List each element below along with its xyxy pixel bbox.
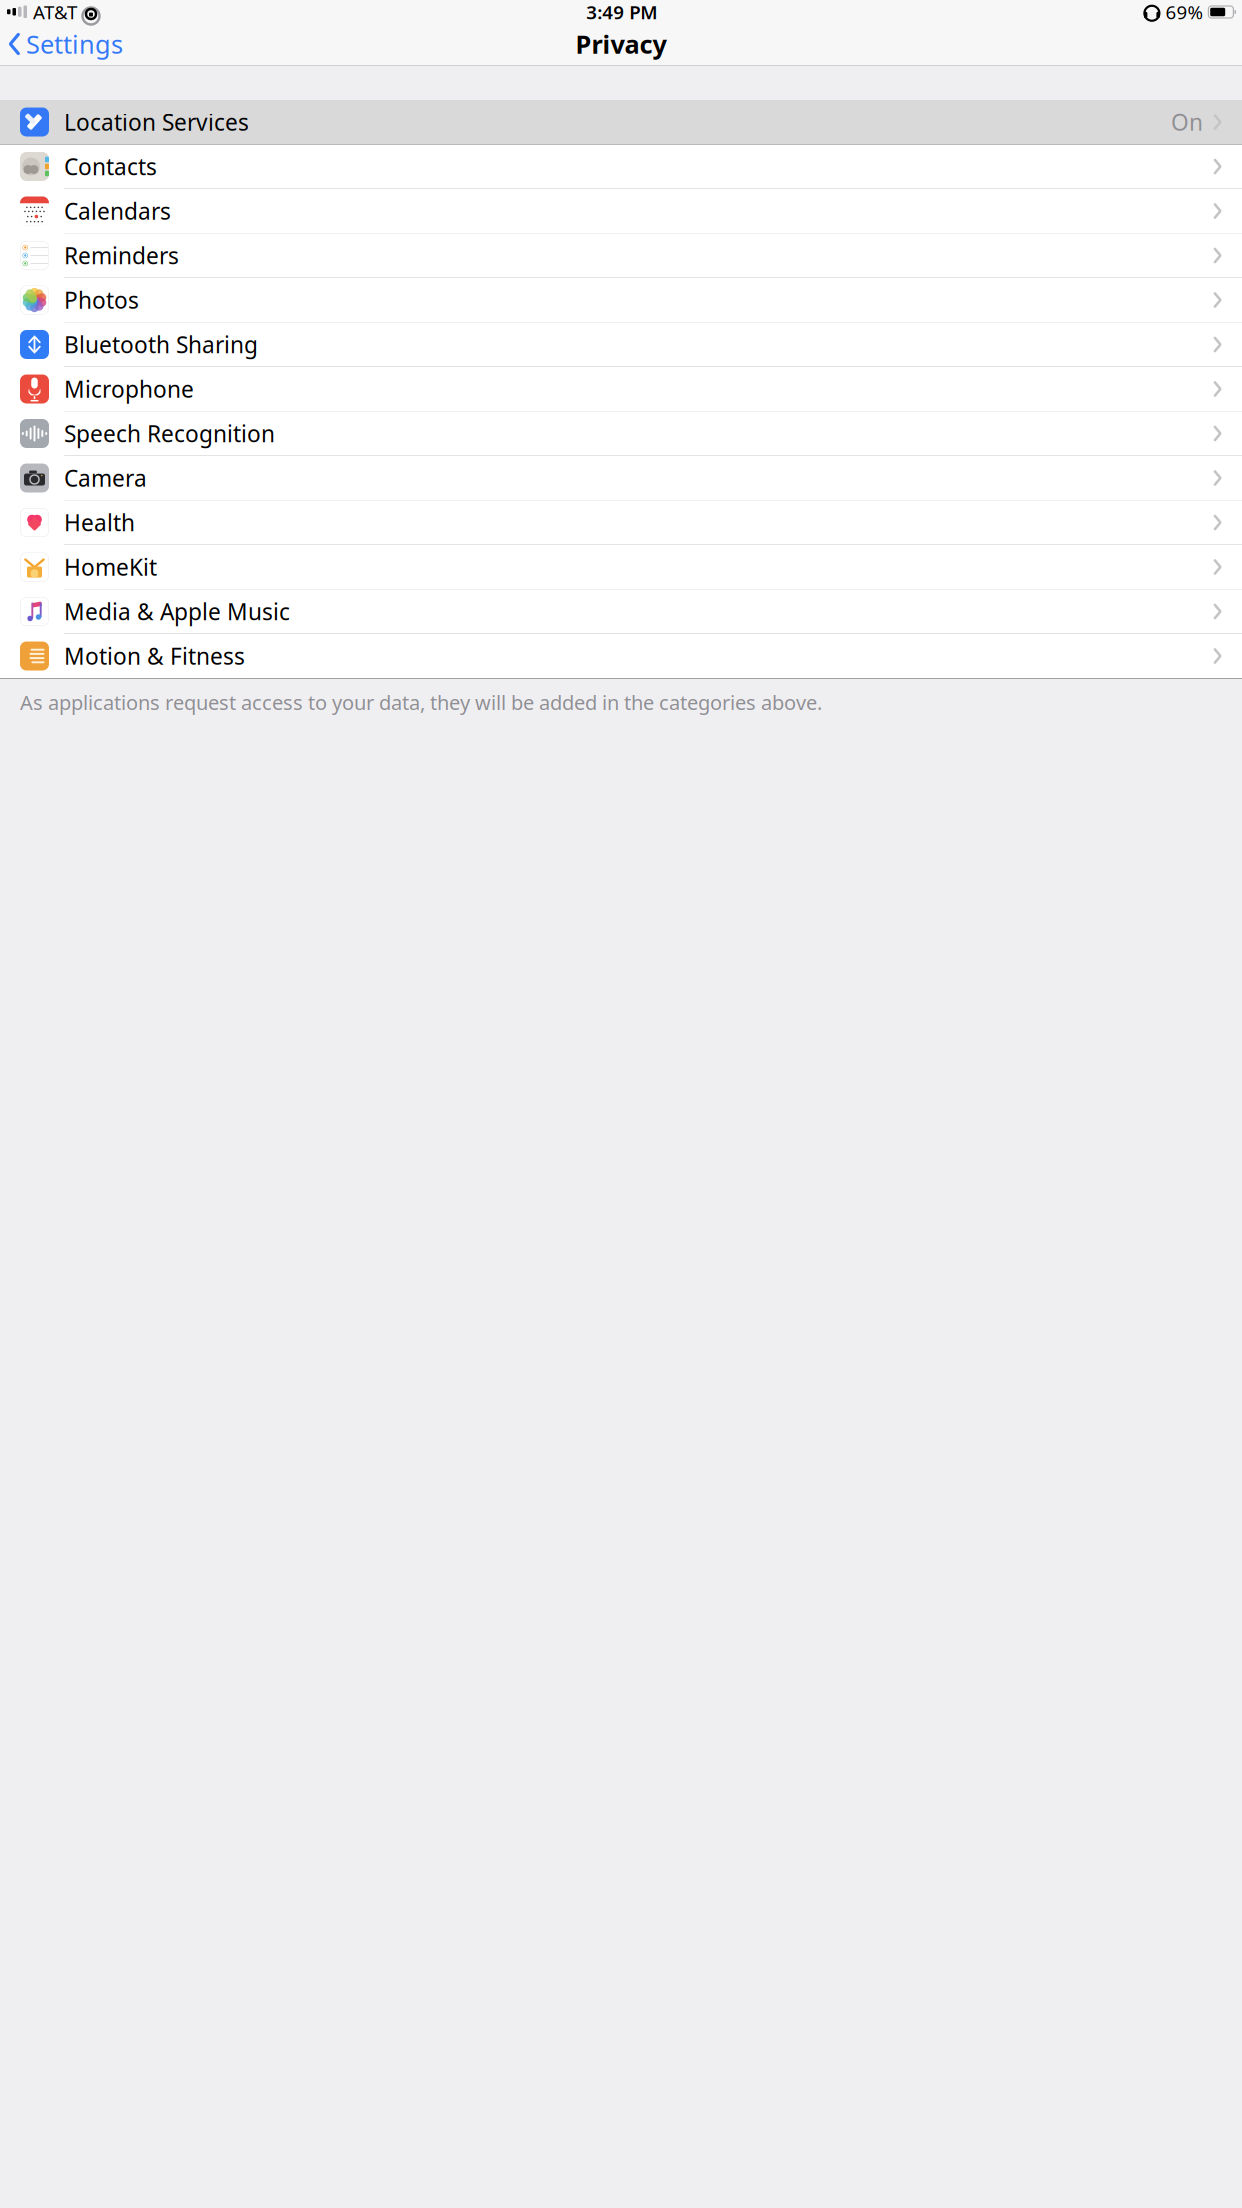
button[interactable]: Media & Apple Music bbox=[0, 589, 1242, 634]
staticText: HomeKit bbox=[64, 552, 157, 582]
button[interactable]: Contacts bbox=[0, 144, 1242, 189]
staticText: Settings bbox=[26, 27, 123, 61]
staticText: 3:49 PM bbox=[586, 0, 657, 24]
staticText: Motion & Fitness bbox=[64, 641, 245, 671]
staticText: AT&T bbox=[33, 0, 77, 24]
button[interactable]: Location Services bbox=[0, 100, 1242, 144]
button[interactable]: Camera bbox=[0, 456, 1242, 500]
staticText: Privacy bbox=[575, 27, 666, 61]
button[interactable]: Motion & Fitness bbox=[0, 634, 1242, 678]
staticText: Location Services bbox=[64, 107, 249, 137]
button[interactable]: Health bbox=[0, 500, 1242, 545]
staticText: 69% bbox=[1165, 0, 1203, 24]
staticText: Health bbox=[64, 507, 135, 537]
staticText: Microphone bbox=[64, 374, 194, 404]
staticText: Bluetooth Sharing bbox=[64, 329, 258, 359]
staticText: Calendars bbox=[64, 196, 171, 226]
button[interactable]: Settings bbox=[0, 23, 133, 65]
staticText: As applications request access to your d… bbox=[20, 689, 822, 716]
staticText: Speech Recognition bbox=[64, 418, 275, 448]
button[interactable]: HomeKit bbox=[0, 545, 1242, 589]
staticText: Camera bbox=[64, 463, 147, 493]
button[interactable]: Reminders bbox=[0, 233, 1242, 278]
button[interactable]: Bluetooth Sharing bbox=[0, 322, 1242, 367]
button[interactable]: Speech Recognition bbox=[0, 411, 1242, 456]
staticText: Reminders bbox=[64, 240, 179, 270]
staticText: Contacts bbox=[64, 151, 157, 181]
staticText: On bbox=[1171, 107, 1203, 137]
staticText: Photos bbox=[64, 285, 139, 315]
button[interactable]: Photos bbox=[0, 278, 1242, 322]
staticText: Media & Apple Music bbox=[64, 596, 290, 626]
button[interactable]: Microphone bbox=[0, 367, 1242, 411]
button[interactable]: Calendars bbox=[0, 189, 1242, 233]
